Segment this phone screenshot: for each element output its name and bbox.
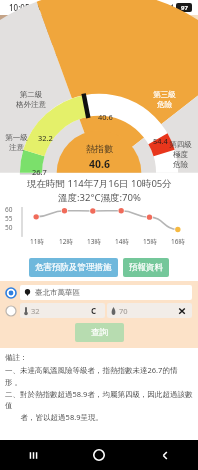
staticText: 50 — [5, 223, 13, 232]
staticText: 臺北市萬華區 — [35, 288, 80, 297]
staticText: 熱指數 — [86, 143, 113, 154]
button[interactable]: 臺北市萬華區 — [6, 285, 192, 300]
staticText: 70 — [119, 306, 128, 316]
staticText: 第四級 極度 危險 — [169, 140, 192, 169]
button[interactable]: 70 — [107, 303, 192, 318]
staticText: 查詢 — [91, 327, 108, 338]
staticText: 15時 — [143, 237, 157, 246]
staticText: 16時 — [171, 237, 185, 246]
button[interactable]: Recents — [0, 440, 66, 470]
staticText: 40.6 — [98, 112, 113, 122]
staticText: 第三級 危險 — [153, 90, 176, 109]
staticText: 現在時間 114年7月16日 10時05分 — [27, 177, 172, 190]
staticText: 97 — [181, 4, 188, 12]
button[interactable]: 危害預防及管理措施 — [29, 258, 118, 277]
staticText: 危害預防及管理措施 — [35, 262, 112, 273]
staticText: 40.6 — [89, 157, 110, 171]
staticText: 10:05 — [9, 2, 30, 13]
button[interactable]: Home — [66, 440, 132, 470]
staticText: 26.7 — [32, 167, 47, 177]
staticText: 第二級 格外注意 — [16, 90, 46, 109]
staticText: 54.4 — [153, 136, 168, 146]
staticText: 二、對於熱指數超過58.9者，均屬第四級，因此超過該數值 者，皆以超過58.9呈… — [5, 389, 193, 422]
staticText: 12時 — [59, 237, 73, 246]
staticText: 32.2 — [38, 133, 53, 143]
staticText: 60 — [5, 205, 13, 214]
staticText: 一、未達高氣溫風險等級者，指熱指數未達26.7的情形 。 — [5, 365, 193, 387]
staticText: 備註： — [5, 353, 28, 362]
staticText: 溫度:32°C濕度:70% — [58, 191, 141, 204]
button[interactable]: 查詢 — [75, 323, 124, 342]
button[interactable] — [6, 306, 16, 316]
button[interactable]: 32 — [20, 303, 105, 318]
staticText: 首頁 / 熱危害風險等級查詢計算 — [7, 50, 153, 64]
staticText: 32 — [31, 306, 40, 316]
staticText: 11時 — [30, 237, 44, 246]
staticText: 13時 — [87, 237, 101, 246]
button[interactable]: Back — [132, 440, 198, 470]
staticText: 高氣溫作業防護資訊網 — [8, 24, 103, 36]
staticText: 55 — [5, 214, 13, 223]
staticText: 14時 — [115, 237, 129, 246]
staticText: 預報資料 — [129, 262, 163, 273]
staticText: C — [91, 305, 97, 316]
staticText: 第一級 注意 — [5, 133, 28, 152]
button[interactable]: 預報資料 — [123, 258, 169, 277]
